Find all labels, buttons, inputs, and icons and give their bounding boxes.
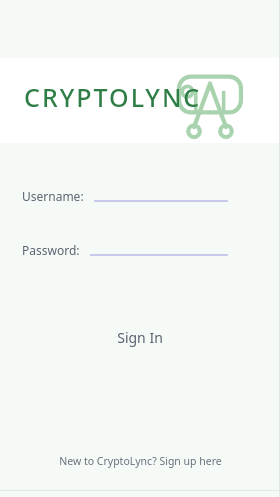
button[interactable]: Sign In	[0, 320, 280, 355]
button[interactable]: Password:	[0, 242, 280, 258]
button[interactable]: New to CryptoLync? Sign up here	[0, 444, 280, 478]
staticText: Password:	[22, 242, 80, 258]
button[interactable]: Username:	[0, 188, 280, 204]
staticText: CRYPTOLYNC	[24, 80, 202, 114]
staticText: Sign In	[117, 328, 163, 347]
staticText: Username:	[22, 188, 84, 204]
staticText: New to CryptoLync? Sign up here	[59, 454, 222, 468]
